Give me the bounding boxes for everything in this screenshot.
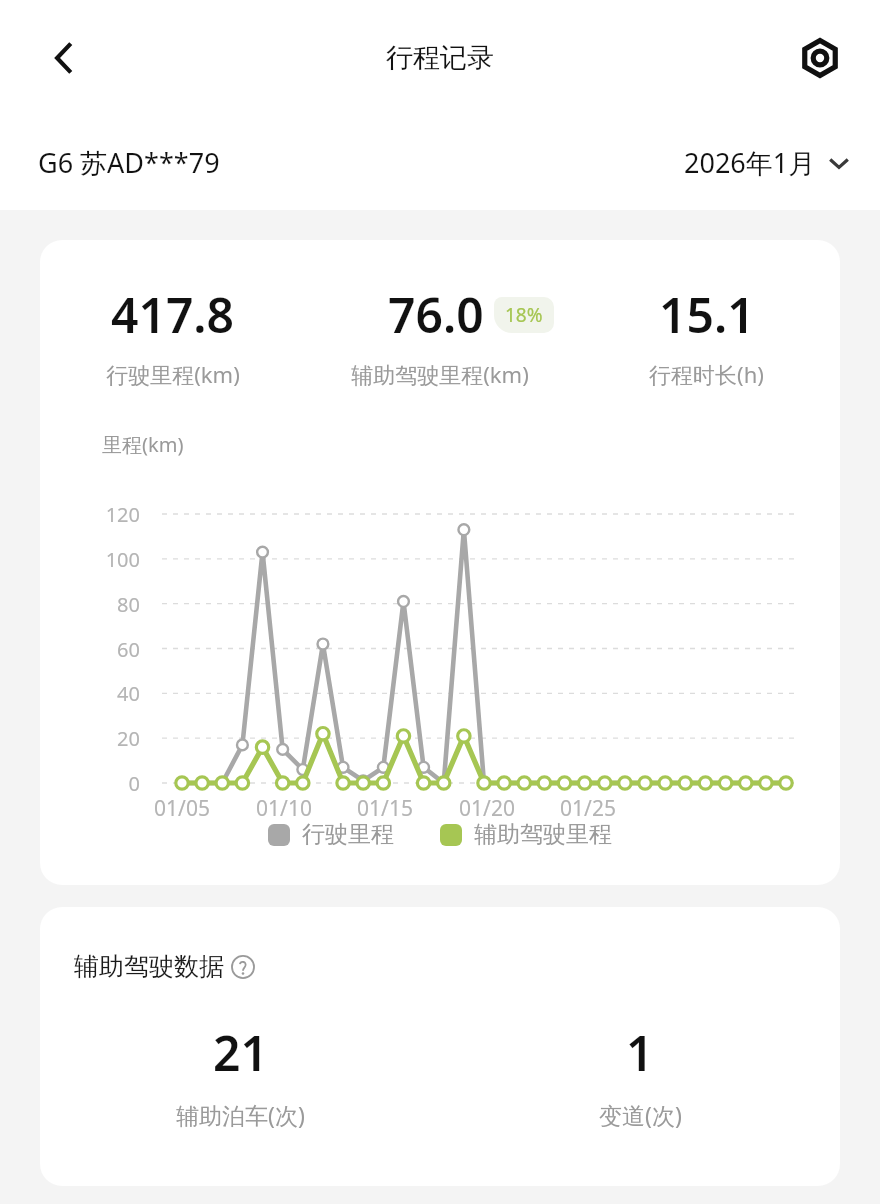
staticText: 417.8	[111, 282, 235, 347]
staticText: 辅助驾驶里程	[474, 820, 612, 849]
staticText: 01/15	[345, 794, 425, 823]
staticText: 21	[213, 1020, 268, 1085]
staticText: 01/05	[142, 794, 222, 823]
staticText: 20	[40, 725, 140, 752]
staticText: 行驶里程(km)	[106, 359, 240, 389]
button[interactable]: 2026年1月	[684, 144, 850, 181]
staticText: 60	[40, 636, 140, 663]
staticText: 80	[40, 591, 140, 618]
staticText: 01/10	[244, 794, 324, 823]
staticText: G6 苏AD***79	[38, 144, 220, 181]
staticText: 行程记录	[386, 41, 494, 75]
staticText: 辅助泊车(次)	[176, 1099, 305, 1130]
staticText: 40	[40, 680, 140, 707]
staticText: 里程(km)	[102, 431, 184, 458]
staticText: 1	[626, 1020, 654, 1085]
staticText: 76.0	[388, 282, 484, 347]
staticText: 15.1	[659, 282, 755, 347]
staticText: 辅助驾驶里程(km)	[351, 359, 529, 389]
staticText: 100	[40, 546, 140, 573]
button[interactable]: Settings	[790, 28, 850, 88]
staticText: 01/20	[447, 794, 527, 823]
staticText: 辅助驾驶数据	[74, 951, 224, 982]
button[interactable]: Back	[34, 27, 96, 89]
staticText: 变道(次)	[599, 1099, 682, 1130]
staticText: 0	[40, 770, 140, 797]
staticText: 18%	[505, 302, 543, 328]
staticText: 120	[40, 501, 140, 528]
staticText: 01/25	[548, 794, 628, 823]
staticText: 行驶里程	[302, 820, 394, 849]
staticText: 行程时长(h)	[649, 359, 764, 389]
button[interactable]: Help	[230, 954, 256, 980]
staticText: 2026年1月	[684, 144, 816, 181]
